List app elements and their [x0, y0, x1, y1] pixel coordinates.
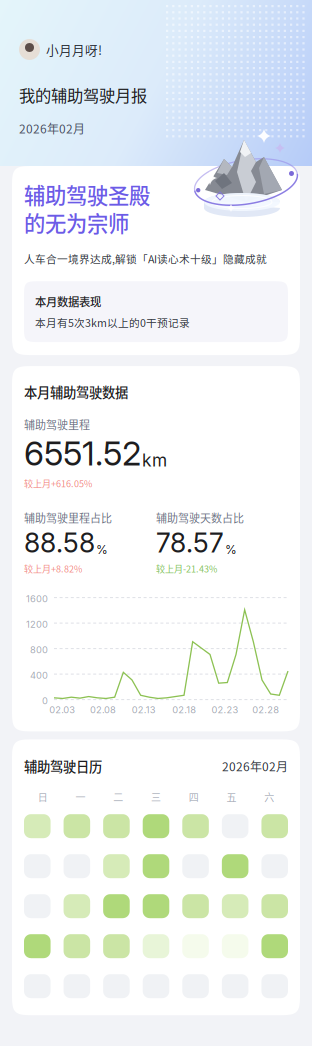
staticText: 五: [226, 790, 236, 804]
staticText: 二: [113, 790, 123, 804]
staticText: 辅助驾驶圣殿: [24, 179, 150, 210]
staticText: 小月月呀!: [46, 40, 102, 59]
staticText: 02.18: [172, 704, 196, 715]
staticText: %: [225, 542, 237, 557]
staticText: 本月辅助驾驶数据: [24, 382, 128, 401]
staticText: 较上月-21.43%: [156, 562, 217, 575]
staticText: 人车合一境界达成,解锁「AI读心术十级」隐藏成就: [24, 251, 267, 266]
staticText: 辅助驾驶里程占比: [24, 510, 112, 526]
staticText: 0: [42, 695, 48, 706]
staticText: 三: [151, 790, 161, 804]
staticText: 88.58: [24, 527, 95, 559]
staticText: 日: [38, 790, 48, 804]
staticText: 2026年02月: [222, 757, 288, 775]
staticText: 2026年02月: [19, 120, 85, 137]
staticText: 02.08: [90, 704, 116, 715]
staticText: 1600: [26, 593, 48, 604]
staticText: 的无为宗师: [24, 207, 129, 238]
staticText: %: [96, 542, 108, 557]
staticText: 78.57: [156, 527, 224, 559]
staticText: 02.13: [132, 704, 156, 715]
staticText: 六: [264, 790, 274, 804]
staticText: 辅助驾驶天数占比: [156, 510, 244, 526]
staticText: 较上月+8.82%: [24, 562, 82, 575]
staticText: 本月有5次3km以上的0干预记录: [35, 315, 190, 330]
staticText: km: [142, 450, 167, 471]
staticText: 400: [30, 670, 48, 681]
staticText: 辅助驾驶里程: [24, 416, 90, 432]
staticText: 02.03: [49, 704, 75, 715]
staticText: 四: [189, 790, 199, 804]
staticText: 02.23: [211, 704, 238, 715]
staticText: 我的辅助驾驶月报: [19, 83, 147, 107]
staticText: 较上月+616.05%: [24, 477, 92, 490]
staticText: 6551.52: [24, 433, 141, 474]
staticText: 800: [30, 644, 48, 655]
staticText: 一: [76, 790, 86, 804]
staticText: 本月数据表现: [35, 293, 101, 310]
staticText: 1200: [26, 619, 48, 630]
staticText: 辅助驾驶日历: [24, 756, 102, 776]
staticText: 02.28: [252, 704, 279, 715]
